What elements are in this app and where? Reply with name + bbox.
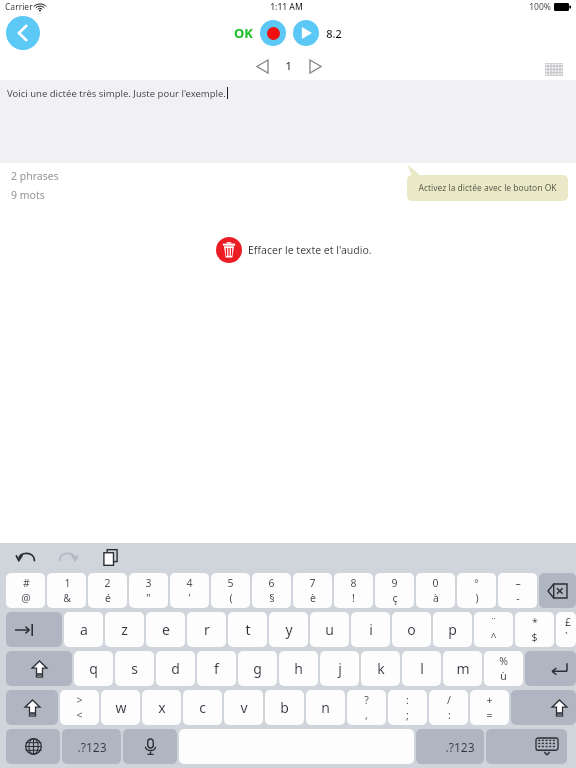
button[interactable]: g (238, 651, 277, 686)
button[interactable]: Return (525, 651, 576, 686)
button[interactable]: o (392, 612, 431, 647)
button[interactable]: > (60, 690, 99, 725)
button[interactable]: b (265, 690, 304, 725)
button[interactable]: r (187, 612, 226, 647)
button[interactable]: Tab (6, 612, 62, 647)
button[interactable]: Paste (96, 543, 124, 571)
button[interactable]: # (6, 573, 45, 608)
button[interactable]: 9 (375, 573, 414, 608)
button[interactable]: z (105, 612, 144, 647)
button[interactable]: 4 (170, 573, 209, 608)
staticText: 9 mots (11, 188, 45, 202)
button[interactable]: Shift (511, 690, 576, 725)
staticText: ) (475, 591, 479, 605)
button[interactable]: n (306, 690, 345, 725)
staticText: g (253, 659, 262, 678)
button[interactable]: v (224, 690, 263, 725)
button[interactable]: OK (234, 24, 253, 42)
staticText: * (532, 615, 538, 629)
button[interactable]: .?123 (416, 729, 484, 764)
button[interactable]: Play (293, 20, 319, 46)
button[interactable]: Undo (12, 543, 40, 571)
button[interactable]: Previous page (252, 56, 272, 76)
button[interactable]: i (351, 612, 390, 647)
button[interactable]: Backspace (539, 573, 576, 608)
button[interactable]: – (498, 573, 537, 608)
button[interactable]: f (197, 651, 236, 686)
button[interactable]: Shift (6, 690, 58, 725)
staticText: h (294, 659, 303, 678)
button[interactable]: Show keyboard (543, 58, 565, 80)
button[interactable]: ° (457, 573, 496, 608)
button[interactable]: Back (6, 16, 40, 50)
button[interactable]: Record (260, 20, 286, 46)
staticText: Carrier (5, 1, 33, 13)
staticText: à (433, 591, 439, 605)
button[interactable]: j (320, 651, 359, 686)
button[interactable]: £ (556, 612, 576, 647)
button[interactable]: e (146, 612, 185, 647)
button[interactable]: 5 (211, 573, 250, 608)
button[interactable]: + (470, 690, 509, 725)
button[interactable]: Shift (6, 651, 72, 686)
staticText: n (321, 698, 330, 717)
button[interactable]: * (515, 612, 554, 647)
staticText: Activez la dictée avec le bouton OK (418, 182, 557, 194)
staticText: 7 (309, 576, 316, 590)
button[interactable]: Effacer le texte et l'audio. (216, 237, 372, 263)
staticText: ' (188, 591, 191, 605)
button[interactable]: Next page (305, 56, 325, 76)
button[interactable]: u (310, 612, 349, 647)
staticText: k (377, 659, 385, 678)
staticText: q (89, 659, 98, 678)
staticText: w (115, 698, 127, 717)
button[interactable]: % (484, 651, 523, 686)
button[interactable]: m (443, 651, 482, 686)
staticText: Effacer le texte et l'audio. (248, 243, 372, 257)
button[interactable]: h (279, 651, 318, 686)
button[interactable]: c (183, 690, 222, 725)
staticText: i (369, 620, 373, 639)
staticText: : (406, 693, 409, 707)
staticText: - (516, 591, 520, 605)
button[interactable]: x (142, 690, 181, 725)
staticText: + (486, 693, 493, 707)
button[interactable]: 6 (252, 573, 291, 608)
staticText: ( (229, 591, 233, 605)
staticText: % (499, 654, 508, 668)
button[interactable]: q (74, 651, 113, 686)
button[interactable]: 3 (129, 573, 168, 608)
button[interactable]: y (269, 612, 308, 647)
staticText: 8 (350, 576, 357, 590)
button[interactable]: 7 (293, 573, 332, 608)
button[interactable]: a (64, 612, 103, 647)
button[interactable]: 0 (416, 573, 455, 608)
button[interactable]: .?123 (62, 729, 121, 764)
button[interactable]: p (433, 612, 472, 647)
button[interactable]: Dictate (123, 729, 177, 764)
staticText: ^ (490, 630, 497, 644)
button[interactable]: ? (347, 690, 386, 725)
staticText: Voici une dictée très simple. Juste pour… (7, 87, 226, 100)
button[interactable]: 1 (47, 573, 86, 608)
button[interactable]: / (429, 690, 468, 725)
staticText: c (199, 698, 206, 717)
button[interactable]: t (228, 612, 267, 647)
button[interactable]: d (156, 651, 195, 686)
button[interactable]: s (115, 651, 154, 686)
button[interactable]: w (101, 690, 140, 725)
button[interactable]: Hide keyboard (486, 729, 567, 764)
button[interactable]: Voici une dictée très simple. Juste pour… (0, 80, 576, 163)
button[interactable]: Redo (54, 543, 82, 571)
staticText: 2 (104, 576, 111, 590)
button[interactable]: l (402, 651, 441, 686)
button[interactable]: 8 (334, 573, 373, 608)
button[interactable]: ¨ (474, 612, 513, 647)
staticText: é (105, 591, 111, 605)
button[interactable]: : (388, 690, 427, 725)
staticText: o (407, 620, 416, 639)
button[interactable]: 2 (88, 573, 127, 608)
button[interactable]: k (361, 651, 400, 686)
button[interactable]: Next keyboard (6, 729, 60, 764)
